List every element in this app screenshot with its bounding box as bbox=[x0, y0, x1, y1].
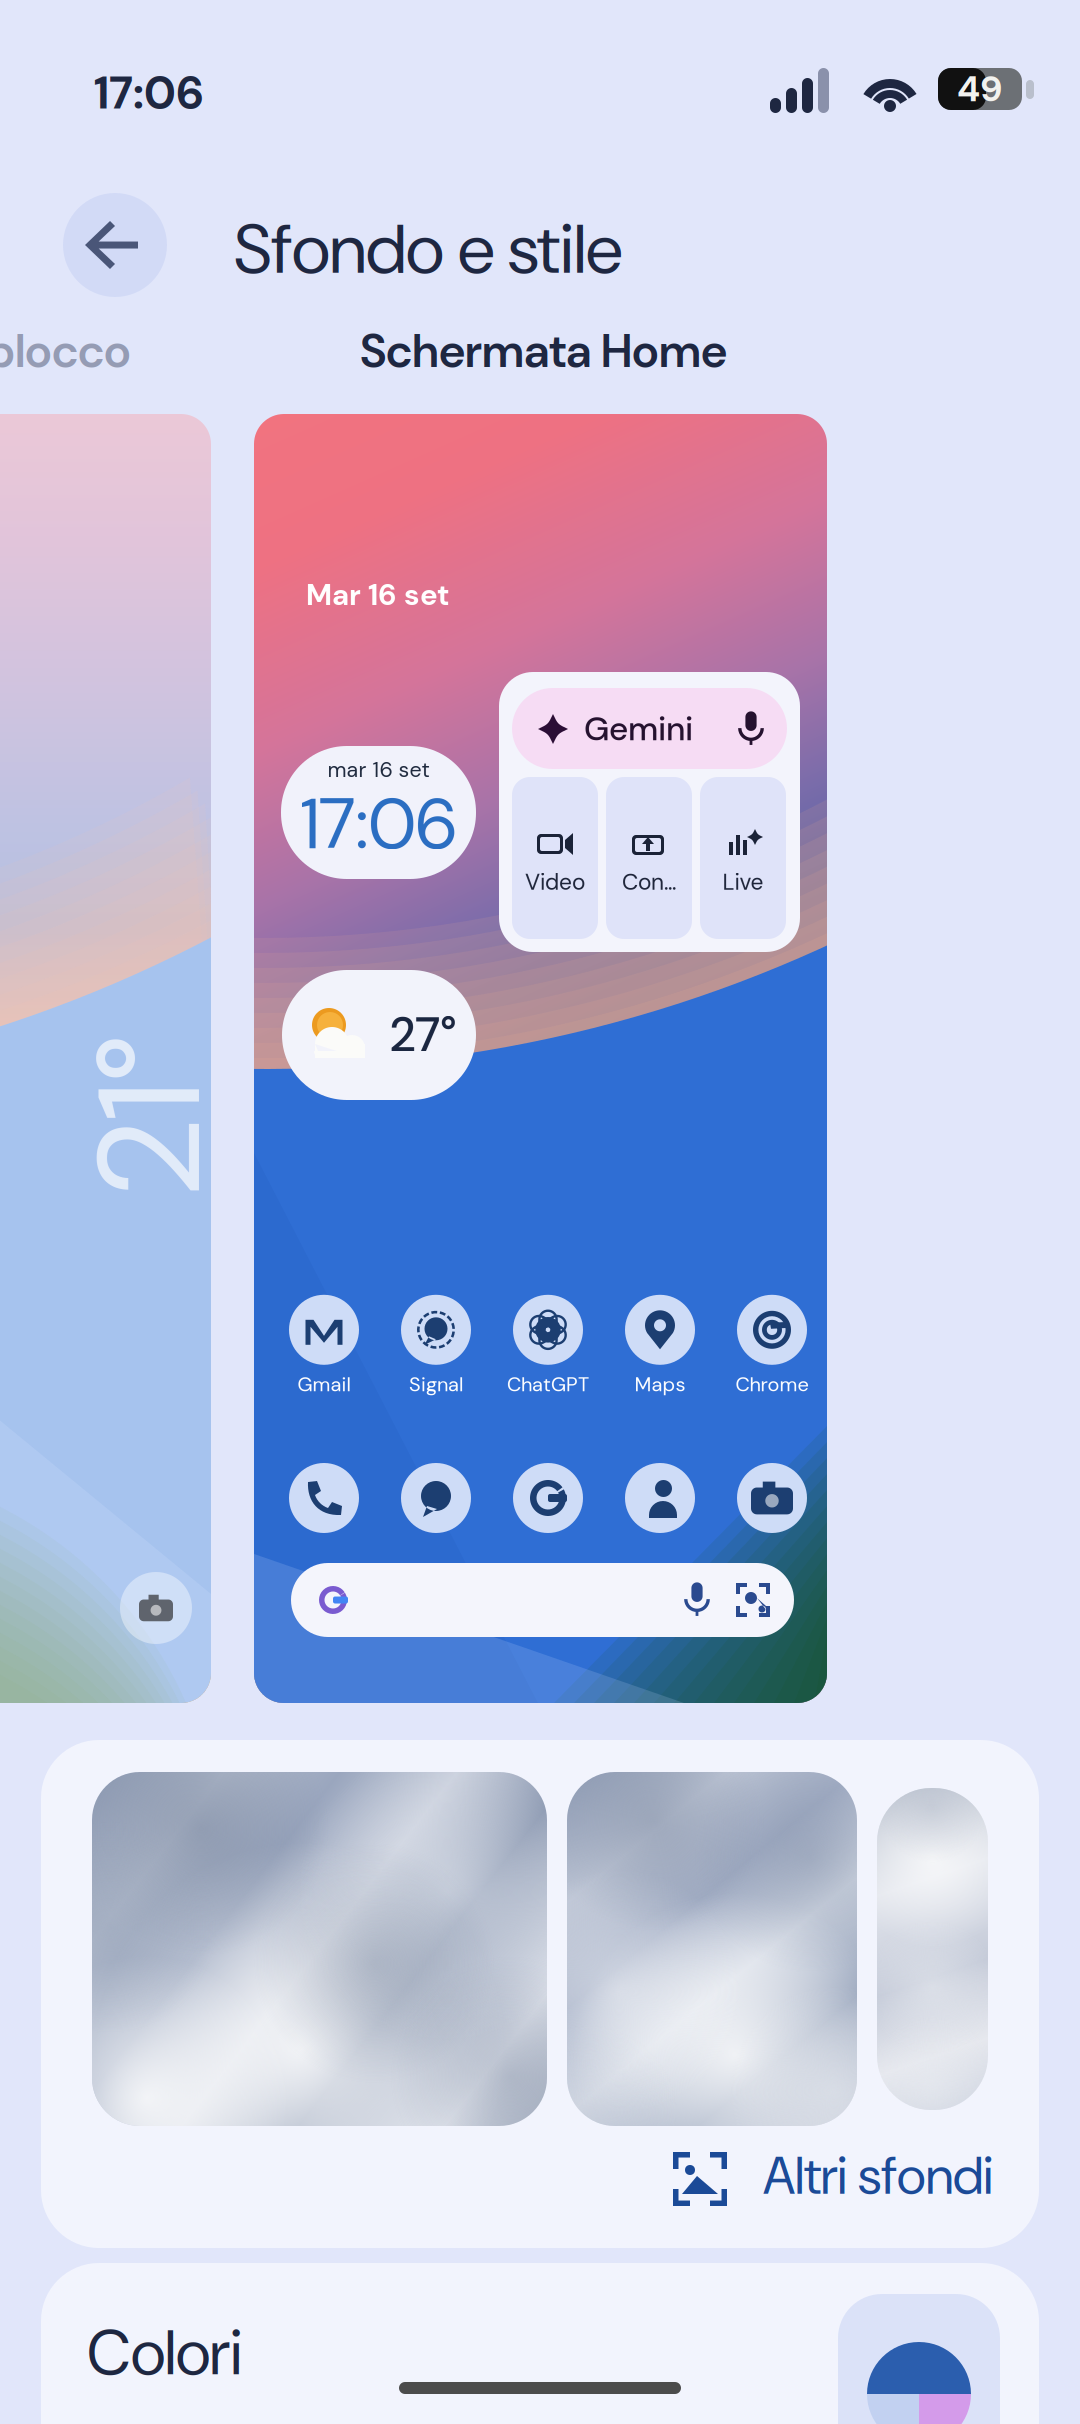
staticText: 17:06 bbox=[94, 64, 203, 122]
staticText: Gmail bbox=[297, 1372, 350, 1397]
staticText: Video bbox=[525, 868, 585, 896]
button[interactable]: Back bbox=[63, 193, 167, 297]
button[interactable]: Maps bbox=[625, 1295, 695, 1397]
staticText: Con... bbox=[622, 868, 676, 896]
staticText: Colori bbox=[87, 2313, 242, 2393]
staticText: Sfondo e stile bbox=[234, 205, 622, 293]
staticText: 21° bbox=[70, 1023, 230, 1205]
staticText: Gemini bbox=[584, 708, 693, 750]
staticText: Chrome bbox=[735, 1372, 808, 1397]
button[interactable]: Messages bbox=[401, 1463, 471, 1533]
button[interactable]: Video bbox=[512, 777, 598, 939]
staticText: 49 bbox=[957, 66, 1003, 112]
button[interactable]: Camera bbox=[737, 1463, 807, 1533]
button[interactable]: Clock 17:06 bbox=[281, 746, 476, 879]
button[interactable]: Contacts bbox=[625, 1463, 695, 1533]
button[interactable]: Weather 27 degrees bbox=[282, 970, 476, 1100]
staticText: blocco bbox=[0, 321, 131, 381]
staticText: Live bbox=[722, 868, 763, 896]
staticText: Maps bbox=[634, 1372, 685, 1397]
button[interactable]: Search bbox=[291, 1563, 794, 1637]
button[interactable]: Signal bbox=[401, 1295, 471, 1397]
button[interactable]: Schermata Home bbox=[360, 322, 760, 380]
button[interactable]: blocco bbox=[0, 322, 186, 380]
button[interactable]: Gmail bbox=[289, 1295, 359, 1397]
staticText: Schermata Home bbox=[360, 321, 727, 381]
button[interactable]: Live bbox=[700, 777, 786, 939]
button[interactable]: Con... bbox=[606, 777, 692, 939]
staticText: ChatGPT bbox=[507, 1372, 589, 1397]
staticText: 17:06 bbox=[300, 779, 456, 869]
staticText: mar 16 set bbox=[327, 756, 429, 783]
button[interactable]: Colour palette bbox=[838, 2294, 1000, 2424]
button[interactable]: Gemini bbox=[512, 688, 787, 769]
staticText: Signal bbox=[409, 1372, 463, 1397]
staticText: Mar 16 set bbox=[306, 576, 450, 614]
button[interactable]: Phone bbox=[289, 1463, 359, 1533]
button[interactable]: Google bbox=[513, 1463, 583, 1533]
button[interactable]: Altri sfondi bbox=[641, 2122, 1039, 2230]
staticText: 27° bbox=[390, 1004, 457, 1065]
staticText: Altri sfondi bbox=[763, 2143, 993, 2209]
button[interactable]: Camera bbox=[120, 1572, 192, 1644]
button[interactable]: ChatGPT bbox=[507, 1295, 589, 1397]
button[interactable]: Chrome bbox=[735, 1295, 808, 1397]
